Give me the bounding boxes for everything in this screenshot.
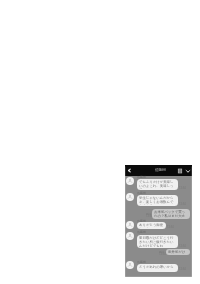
button[interactable]: Profile xyxy=(126,261,134,269)
staticText: 佐藤樹 xyxy=(137,219,146,223)
staticText: 意外何がけ近いって xyxy=(168,250,188,254)
staticText: 既読 12:34 xyxy=(146,212,153,218)
button[interactable]: ありがとう御座ちゃん xyxy=(137,222,166,229)
button[interactable]: とうがあれの暑いから xyxy=(137,264,178,272)
staticText: とうがあれの暑いから xyxy=(139,265,174,269)
staticText: 佐藤樹 xyxy=(137,260,146,264)
staticText: 佐藤樹 xyxy=(155,168,166,173)
button[interactable]: お米何パックで買ったの？私はまだ大丈夫だよ xyxy=(152,209,190,219)
staticText: 佐藤樹 xyxy=(137,230,146,234)
staticText: 明日暇だけどどこう行きたい所ご飯行きたいんだけどでもね xyxy=(139,236,176,247)
staticText: 学生じゃないんだからさ、楽しくお酒飲んでますか？ xyxy=(139,196,176,205)
staticText: 佐藤樹 xyxy=(137,175,146,179)
staticText: お米何パックで買ったの？私はまだ大丈夫だよ xyxy=(154,210,188,218)
button[interactable]: Profile xyxy=(126,177,134,185)
button[interactable]: 意外何がけ近いって xyxy=(166,249,190,255)
staticText: 佐藤樹 xyxy=(137,191,146,195)
staticText: でもふりかけが美味しいのよこれ、美味しって… xyxy=(139,180,176,189)
button[interactable]: Profile xyxy=(126,221,134,229)
button[interactable]: でもふりかけが美味しいのよこれ、美味しって… xyxy=(137,179,178,190)
button[interactable]: 学生じゃないんだからさ、楽しくお酒飲んでますか？ xyxy=(137,195,178,206)
button[interactable]: Profile xyxy=(126,193,134,201)
button[interactable]: Back xyxy=(126,167,133,174)
button[interactable]: Profile xyxy=(126,232,134,240)
button[interactable]: More options xyxy=(185,168,191,174)
staticText: 既読 12:34 xyxy=(159,250,166,256)
button[interactable]: Album xyxy=(177,168,183,174)
staticText: ありがとう御座ちゃん xyxy=(139,223,164,228)
button[interactable]: 明日暇だけどどこう行きたい所ご飯行きたいんだけどでもね xyxy=(137,235,178,248)
